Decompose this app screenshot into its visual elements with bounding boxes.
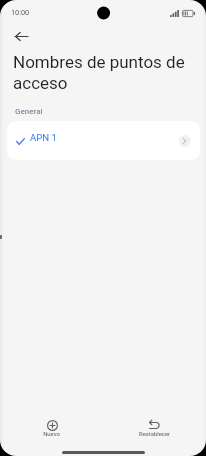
button[interactable]: Editar APN 1 [179,135,191,147]
button[interactable]: Restablecer [103,400,206,456]
button[interactable]: Atras [8,23,34,49]
staticText: 10:00 [11,8,30,17]
button[interactable]: Nuevo [0,400,103,456]
staticText: Restablecer [139,431,170,438]
button[interactable]: APN 1 [7,121,200,160]
staticText: APN 1 [30,132,57,143]
staticText: General [15,107,43,116]
staticText: Nuevo [43,431,60,438]
staticText: Nombres de puntos de acceso [13,52,199,93]
